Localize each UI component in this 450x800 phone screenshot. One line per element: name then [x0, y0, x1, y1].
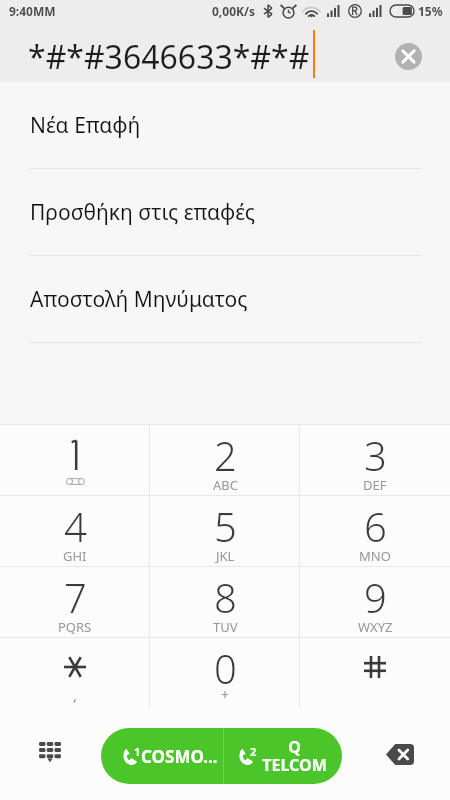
- button[interactable]: 6: [300, 496, 450, 566]
- staticText: DEF: [363, 476, 387, 494]
- staticText: 9: [364, 570, 387, 624]
- button[interactable]: 8: [150, 567, 300, 637]
- staticText: Προσθήκη στις επαφές: [30, 198, 256, 227]
- button[interactable]: [0, 425, 150, 495]
- button[interactable]: Προσθήκη στις επαφές: [0, 169, 450, 256]
- button[interactable]: Αποστολή Μηνύματος: [0, 256, 450, 343]
- button[interactable]: Νέα Επαφή: [0, 82, 450, 169]
- button[interactable]: Backspace: [372, 708, 428, 800]
- staticText: 9:40MM: [9, 3, 56, 19]
- staticText: 3: [364, 428, 387, 482]
- staticText: 2: [250, 744, 257, 759]
- staticText: Αποστολή Μηνύματος: [30, 285, 248, 314]
- staticText: Q TELCOM: [262, 736, 327, 776]
- staticText: JKL: [216, 547, 235, 565]
- staticText: PQRS: [58, 618, 92, 636]
- staticText: ABC: [213, 476, 238, 494]
- staticText: 4: [64, 499, 87, 553]
- button[interactable]: 7: [0, 567, 150, 637]
- button[interactable]: 5: [150, 496, 300, 566]
- button[interactable]: 9: [300, 567, 450, 637]
- staticText: +: [221, 685, 230, 704]
- staticText: 6: [364, 499, 387, 553]
- staticText: WXYZ: [358, 618, 393, 636]
- staticText: *#*#3646633*#*#: [28, 35, 310, 79]
- staticText: 0: [214, 641, 237, 695]
- staticText: 1: [134, 744, 141, 759]
- button[interactable]: 2: [150, 425, 300, 495]
- staticText: MNO: [359, 547, 391, 565]
- button[interactable]: [300, 638, 450, 708]
- button[interactable]: 0: [150, 638, 300, 708]
- button[interactable]: Hide keypad: [22, 708, 78, 800]
- staticText: GHI: [63, 547, 87, 565]
- button[interactable]: ,: [0, 638, 150, 708]
- staticText: 8: [214, 570, 237, 624]
- staticText: 7: [64, 570, 87, 624]
- button[interactable]: 1: [101, 728, 223, 784]
- staticText: 15%: [418, 3, 443, 19]
- button[interactable]: 2: [224, 728, 342, 784]
- staticText: 5: [214, 499, 237, 553]
- staticText: ,: [73, 685, 78, 705]
- button[interactable]: Clear input: [386, 34, 430, 78]
- staticText: 2: [214, 428, 237, 482]
- staticText: TUV: [213, 618, 238, 636]
- button[interactable]: 4: [0, 496, 150, 566]
- staticText: Νέα Επαφή: [30, 111, 141, 140]
- staticText: COSMO...: [141, 745, 218, 768]
- button[interactable]: 3: [300, 425, 450, 495]
- staticText: 0,00K/s: [212, 3, 255, 19]
